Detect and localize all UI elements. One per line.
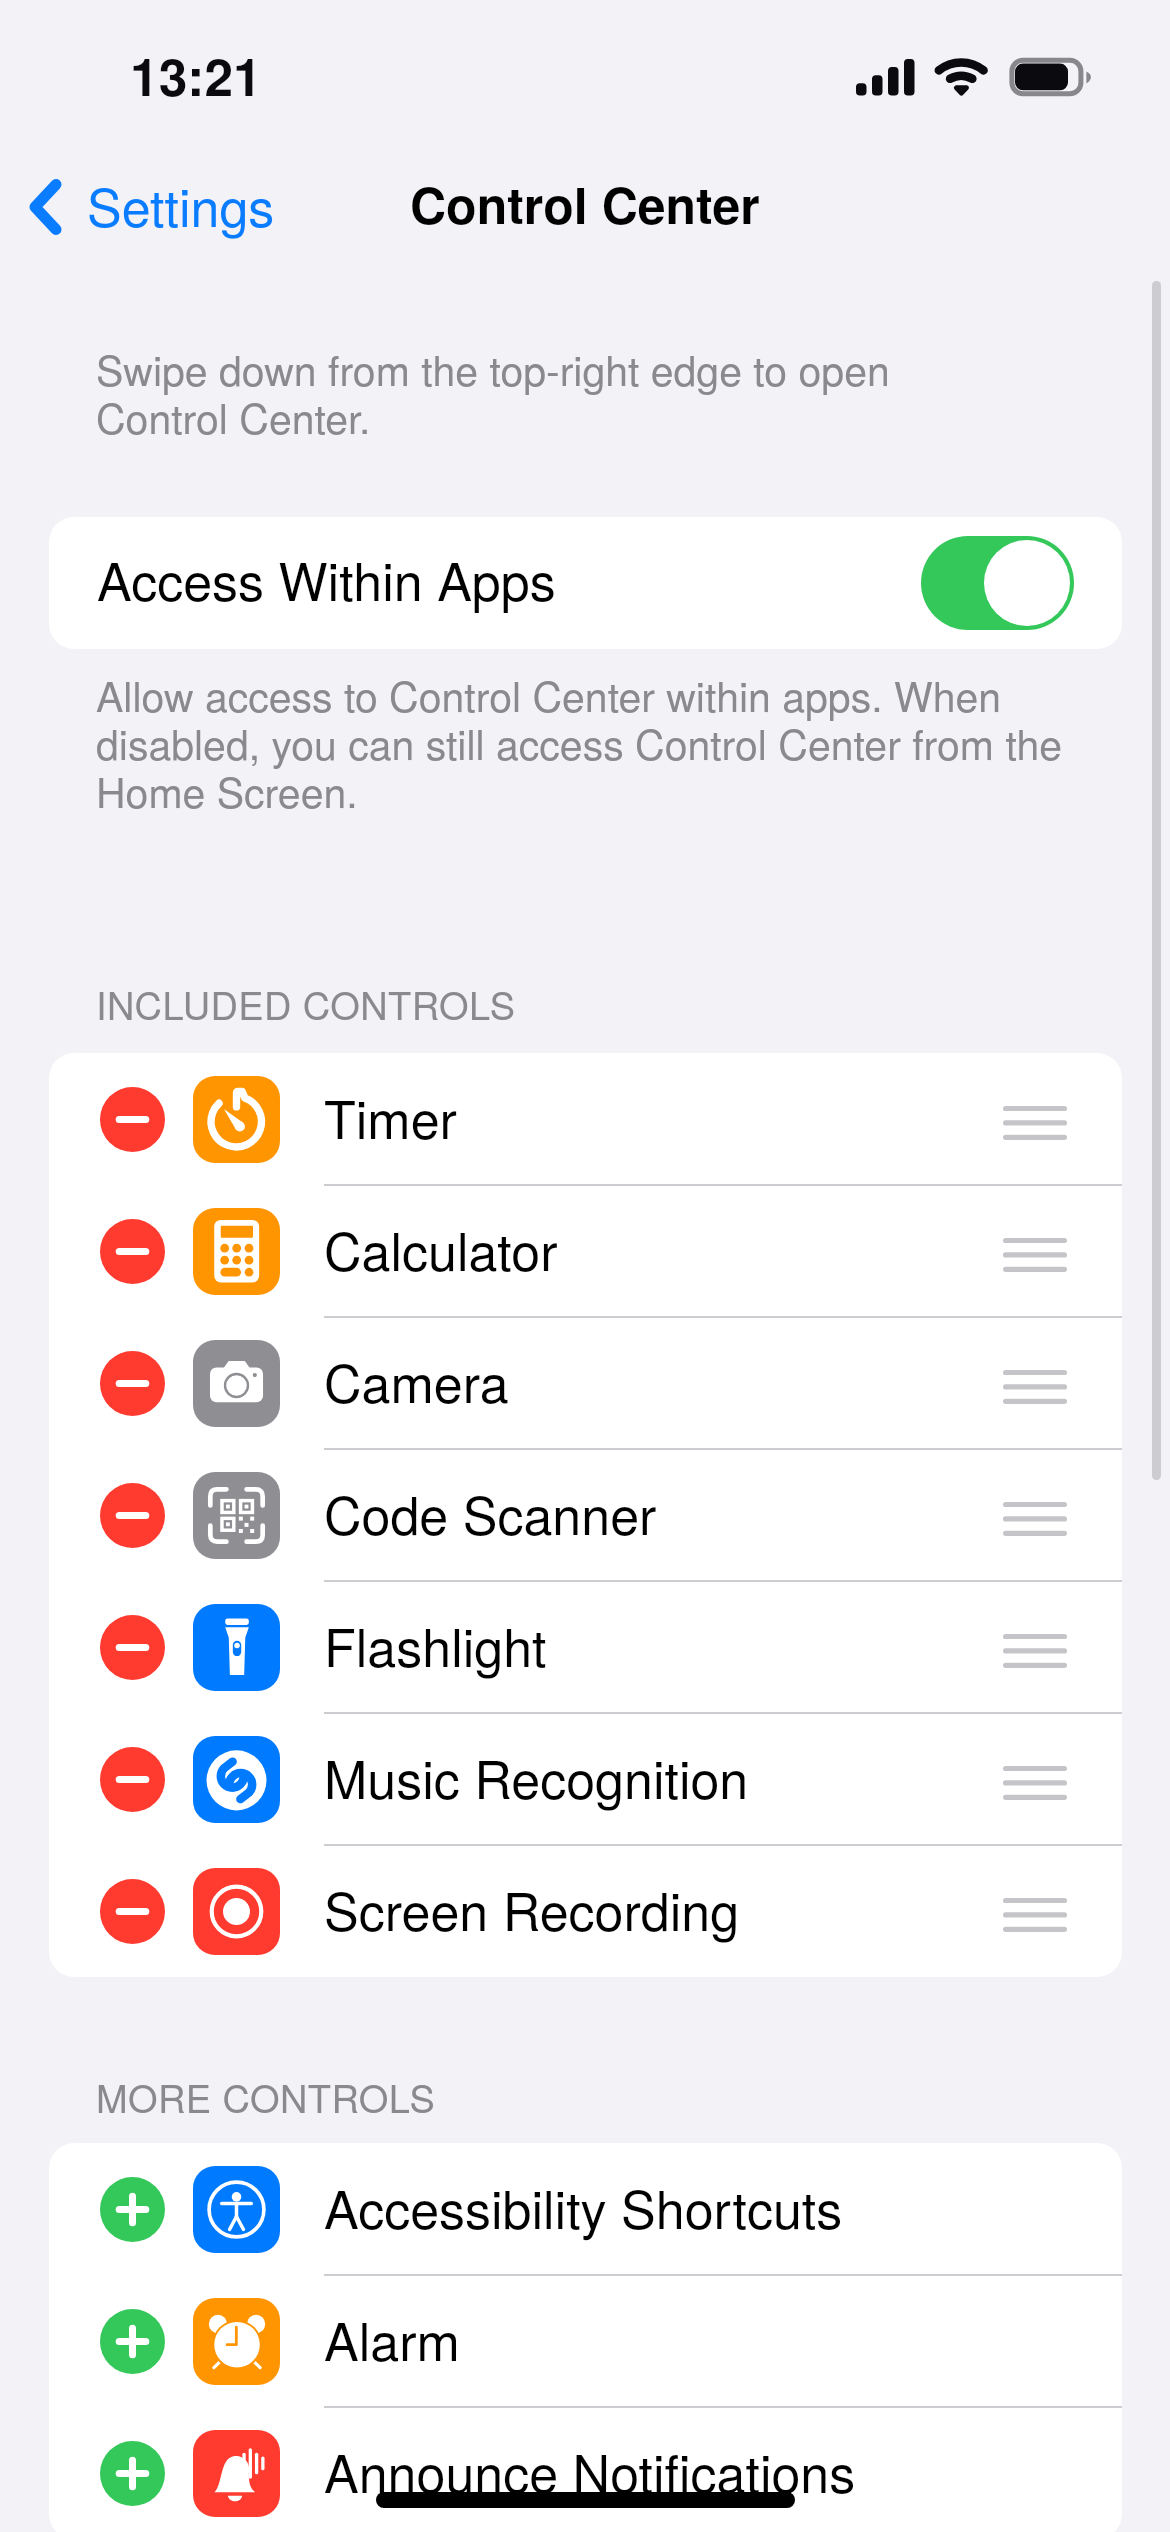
staticText: Allow access to Control Center within ap… xyxy=(96,665,1081,820)
staticText: Control Center xyxy=(410,168,760,240)
button[interactable]: Access Within Apps toggle xyxy=(921,536,1074,630)
staticText: Access Within Apps xyxy=(97,541,556,615)
staticText: Music Recognition xyxy=(324,1739,749,1813)
button[interactable]: Remove Flashlight xyxy=(49,1581,1122,1713)
button[interactable]: Add Accessibility Shortcuts xyxy=(49,2143,1122,2275)
staticText: 13:21 xyxy=(130,38,262,112)
button[interactable]: Remove Code Scanner xyxy=(100,1483,165,1548)
button[interactable]: Add Alarm xyxy=(49,2275,1122,2407)
staticText: MORE CONTROLS xyxy=(96,2069,436,2123)
button[interactable]: Remove Calculator xyxy=(100,1219,165,1284)
staticText: Alarm xyxy=(324,2301,460,2375)
button[interactable]: Remove Music Recognition xyxy=(100,1747,165,1812)
button[interactable]: Remove Screen Recording xyxy=(100,1879,165,1944)
button[interactable]: Remove Flashlight xyxy=(100,1615,165,1680)
button[interactable]: Reorder Timer xyxy=(1003,1099,1067,1139)
staticText: INCLUDED CONTROLS xyxy=(96,976,516,1030)
button[interactable]: Reorder Music Recognition xyxy=(1003,1759,1067,1799)
staticText: Timer xyxy=(324,1079,457,1153)
button[interactable]: Remove Screen Recording xyxy=(49,1845,1122,1977)
staticText: Settings xyxy=(87,167,275,241)
staticText: Accessibility Shortcuts xyxy=(324,2169,843,2243)
button[interactable]: Reorder Calculator xyxy=(1003,1231,1067,1271)
button[interactable]: Add Accessibility Shortcuts xyxy=(100,2177,165,2242)
button[interactable]: Remove Camera xyxy=(49,1317,1122,1449)
staticText: Calculator xyxy=(324,1211,558,1285)
button[interactable]: Reorder Screen Recording xyxy=(1003,1891,1067,1931)
button[interactable]: Settings xyxy=(30,167,275,247)
button[interactable]: Remove Camera xyxy=(100,1351,165,1416)
button[interactable]: Remove Calculator xyxy=(49,1185,1122,1317)
button[interactable]: Reorder Camera xyxy=(1003,1363,1067,1403)
staticText: Flashlight xyxy=(324,1607,547,1681)
staticText: Announce Notifications xyxy=(324,2433,856,2507)
button[interactable]: Remove Timer xyxy=(100,1087,165,1152)
staticText: Code Scanner xyxy=(324,1475,657,1549)
staticText: Screen Recording xyxy=(324,1871,740,1945)
button[interactable]: Add Announce Notifications xyxy=(100,2441,165,2506)
button[interactable]: Remove Timer xyxy=(49,1053,1122,1185)
button[interactable]: Add Announce Notifications xyxy=(49,2407,1122,2532)
button[interactable]: Remove Code Scanner xyxy=(49,1449,1122,1581)
button[interactable]: Reorder Flashlight xyxy=(1003,1627,1067,1667)
button[interactable]: Reorder Code Scanner xyxy=(1003,1495,1067,1535)
button[interactable]: Add Alarm xyxy=(100,2309,165,2374)
staticText: Camera xyxy=(324,1343,509,1417)
button[interactable]: Remove Music Recognition xyxy=(49,1713,1122,1845)
button[interactable]: Access Within Apps xyxy=(49,517,1122,649)
staticText: Swipe down from the top-right edge to op… xyxy=(96,339,890,446)
